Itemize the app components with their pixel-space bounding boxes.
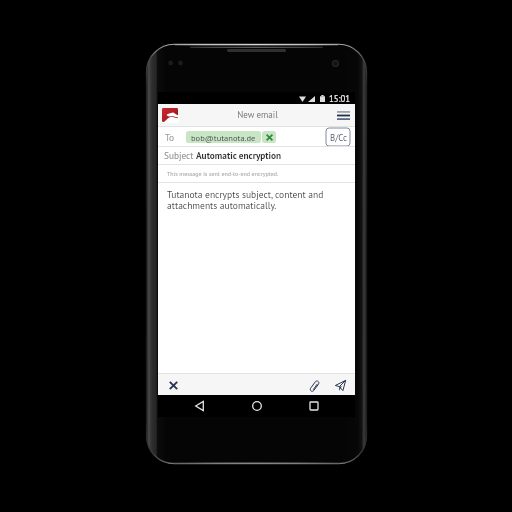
button[interactable]: Discard draft [164,375,183,395]
button[interactable]: B/Cc [326,128,350,146]
staticText: 15:01 [329,93,351,104]
staticText: Automatic encryption [196,150,282,162]
button[interactable]: Remove recipient [262,131,276,143]
staticText: bob@tutanota.de [191,132,256,143]
button[interactable]: bob@tutanota.de [186,131,261,143]
staticText: New email [184,109,331,121]
button[interactable]: Back [182,395,216,417]
button[interactable]: Send [331,375,350,395]
button[interactable]: Tutanota [158,104,184,126]
staticText: Tutanota encrypts subject, content and a… [167,188,324,212]
button[interactable]: Attach file [304,375,323,395]
button[interactable]: Menu [331,104,355,126]
staticText: To [165,131,175,143]
button[interactable]: Home [240,395,274,417]
staticText: This message is sent end-to-end encrypte… [167,170,279,178]
button[interactable]: Recent apps [297,395,331,417]
staticText: Subject [164,150,196,162]
staticText: B/Cc [330,132,347,143]
